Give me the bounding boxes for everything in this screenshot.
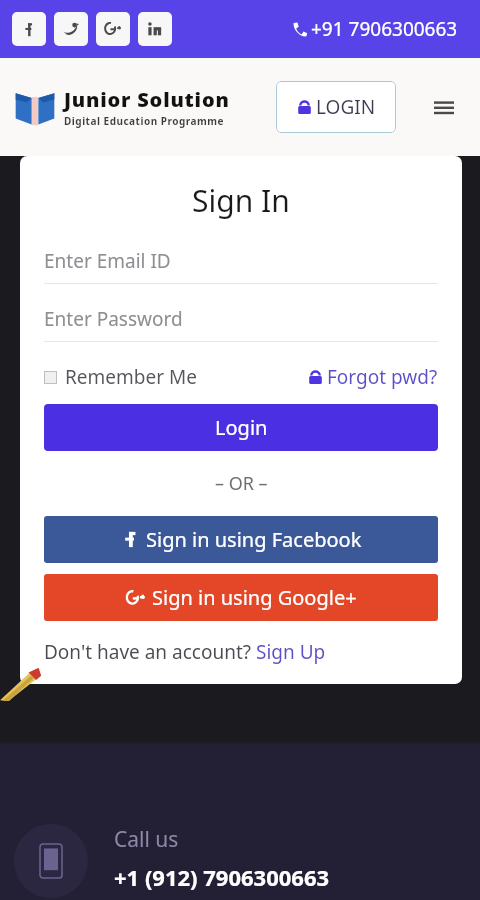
staticText: Sign Up <box>256 639 326 665</box>
staticText: Sign in using Google+ <box>152 584 357 611</box>
staticText: Forgot pwd? <box>327 364 438 390</box>
button[interactable]: Forgot pwd? <box>308 364 438 390</box>
button[interactable]: Sign Up <box>256 639 326 665</box>
staticText: Enter Password <box>44 306 183 332</box>
button[interactable]: +91 7906300663 <box>292 16 458 42</box>
button[interactable]: Enter Email ID <box>44 248 438 284</box>
staticText: Digital Education Programme <box>64 114 225 128</box>
button[interactable]: Junior Solution <box>14 86 230 128</box>
button[interactable]: LOGIN <box>276 81 396 133</box>
staticText: Don't have an account? <box>44 639 256 665</box>
staticText: Sign in using Facebook <box>146 526 362 553</box>
button[interactable]: twitter <box>54 12 88 46</box>
staticText: Login <box>215 414 268 441</box>
button[interactable]: Login <box>44 404 438 451</box>
button[interactable]: Call us <box>14 824 330 898</box>
button[interactable]: google plus <box>96 12 130 46</box>
button[interactable]: facebook <box>12 12 46 46</box>
staticText: +91 7906300663 <box>311 16 458 42</box>
button[interactable]: linkedin <box>138 12 172 46</box>
staticText: Enter Email ID <box>44 248 171 274</box>
button[interactable]: Menu <box>426 89 462 125</box>
button[interactable]: Remember Me <box>44 364 197 390</box>
staticText: – OR – <box>215 471 268 496</box>
staticText: +1 (912) 7906300663 <box>114 862 330 892</box>
staticText: Junior Solution <box>64 86 230 113</box>
staticText: Remember Me <box>65 364 197 390</box>
button[interactable]: Sign in using Facebook <box>44 516 438 563</box>
button[interactable]: Enter Password <box>44 306 438 342</box>
staticText: Sign In <box>192 180 290 221</box>
button[interactable]: Sign in using Google+ <box>44 574 438 621</box>
staticText: LOGIN <box>316 94 376 120</box>
staticText: Call us <box>114 825 179 854</box>
